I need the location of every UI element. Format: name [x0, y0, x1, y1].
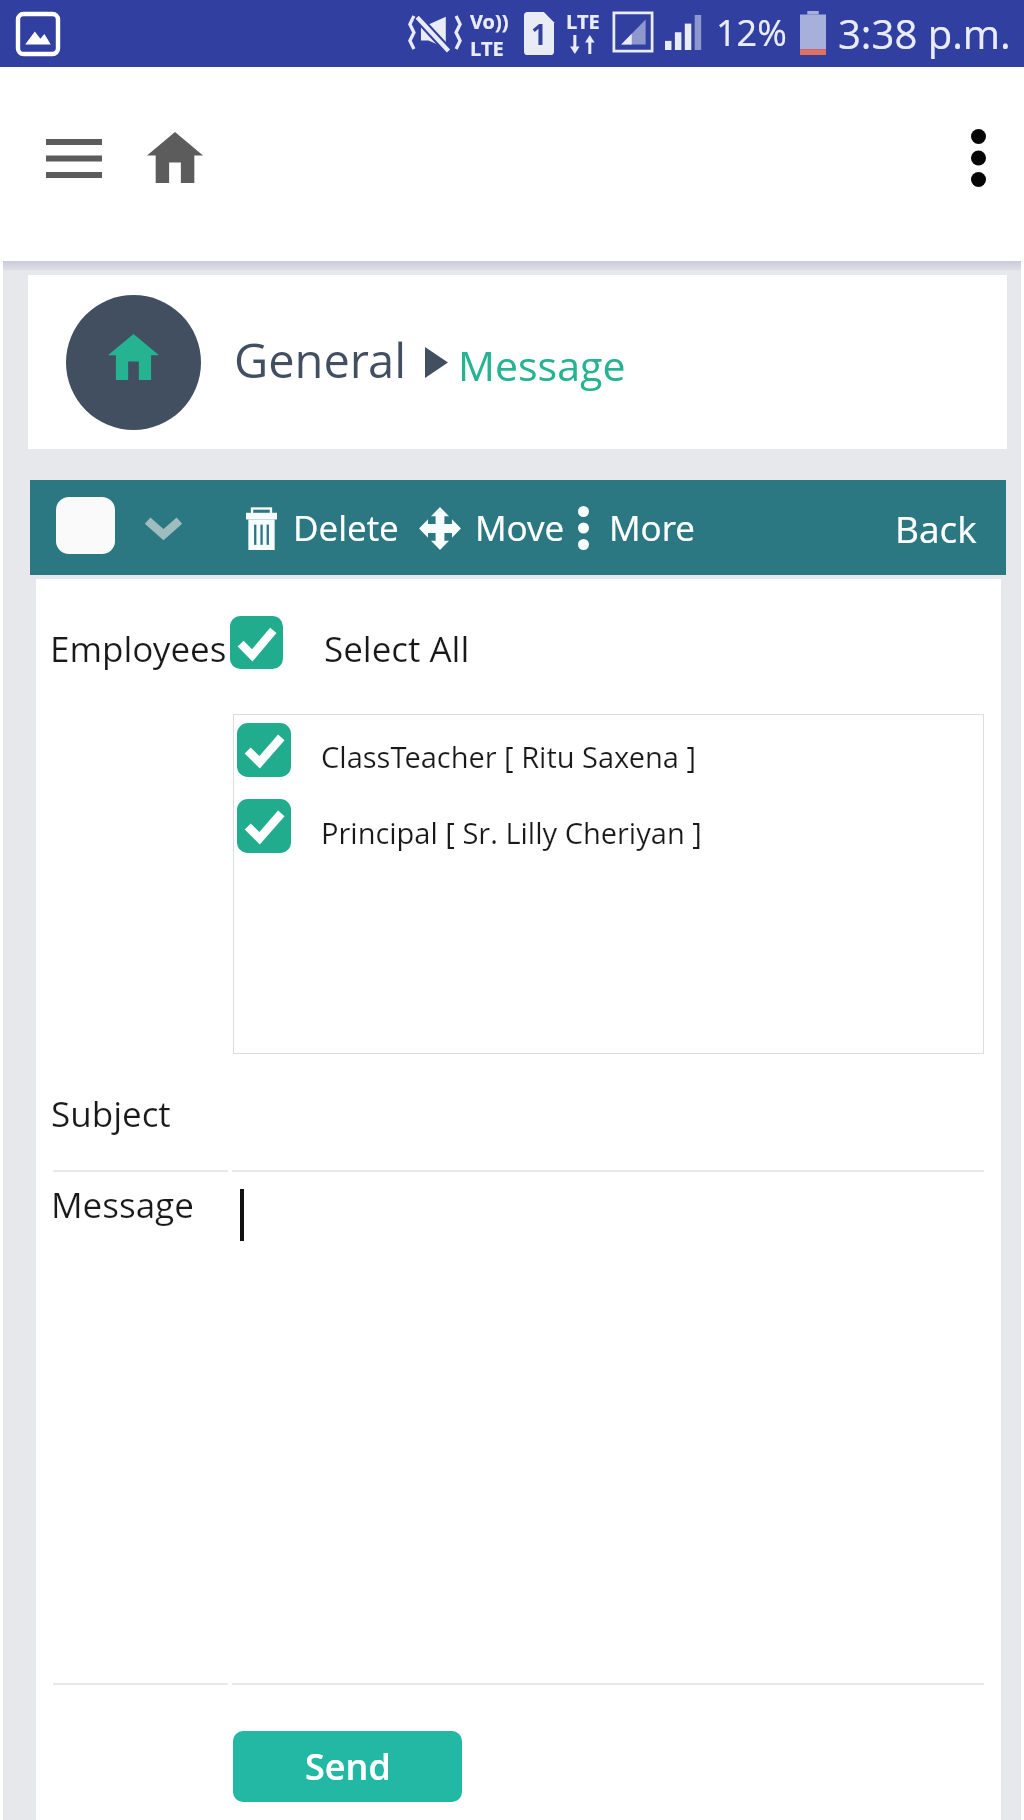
- staticText: Back: [895, 503, 977, 553]
- staticText: Select All: [324, 625, 470, 673]
- staticText: Send: [305, 1742, 391, 1791]
- button[interactable]: Send: [233, 1731, 462, 1802]
- staticText: Message: [51, 1181, 194, 1229]
- button[interactable]: Principal [ Sr. Lilly Cheriyan ]: [237, 798, 702, 854]
- button[interactable]: Menu: [18, 110, 130, 206]
- button[interactable]: Home: [66, 295, 201, 430]
- staticText: LTE: [566, 8, 600, 35]
- button[interactable]: Back: [871, 500, 1001, 556]
- button[interactable]: Move: [419, 500, 565, 556]
- staticText: Delete: [293, 504, 399, 552]
- button[interactable]: Home: [127, 109, 223, 205]
- staticText: 3:38 p.m.: [838, 6, 1011, 60]
- staticText: ClassTeacher [ Ritu Saxena ]: [321, 737, 696, 776]
- staticText: Message: [458, 337, 626, 393]
- staticText: 1: [531, 15, 547, 53]
- staticText: More: [609, 504, 695, 552]
- button[interactable]: More: [578, 500, 695, 556]
- staticText: LTE: [470, 35, 504, 62]
- staticText: Vo)): [470, 8, 509, 35]
- staticText: General: [234, 328, 407, 392]
- button[interactable]: Dropdown: [135, 499, 192, 555]
- staticText: Principal [ Sr. Lilly Cheriyan ]: [321, 813, 702, 852]
- button[interactable]: ClassTeacher [ Ritu Saxena ]: [237, 722, 696, 778]
- staticText: Subject: [51, 1090, 171, 1138]
- staticText: Move: [475, 504, 565, 552]
- staticText: Employees: [50, 625, 227, 673]
- button[interactable]: More options: [931, 110, 1024, 206]
- staticText: 12%: [716, 8, 787, 57]
- button[interactable]: Select all employees: [230, 616, 283, 669]
- button[interactable]: Select all: [56, 497, 115, 554]
- button[interactable]: Delete: [246, 500, 399, 556]
